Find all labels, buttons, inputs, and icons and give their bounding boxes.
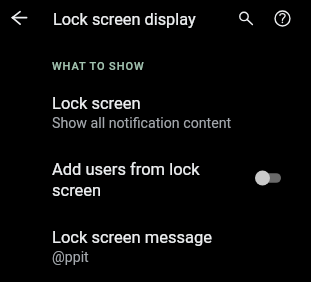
staticText: WHAT TO SHOW [52,60,145,73]
button[interactable]: Lock screen message [0,228,311,266]
staticText: Lock screen display [53,10,196,29]
staticText: Add users from lock screen [52,160,255,200]
staticText: Lock screen message [52,228,212,247]
staticText: @ppit [52,249,89,266]
staticText: Lock screen [52,94,141,113]
button[interactable]: Search [227,0,264,37]
button[interactable]: Add users from lock screen [255,170,281,186]
button[interactable]: Add users from lock screen [0,160,311,200]
staticText: Show all notification content [52,115,232,132]
button[interactable]: Lock screen [0,94,311,132]
button[interactable]: Back [0,0,37,37]
button[interactable]: Help [264,0,301,37]
